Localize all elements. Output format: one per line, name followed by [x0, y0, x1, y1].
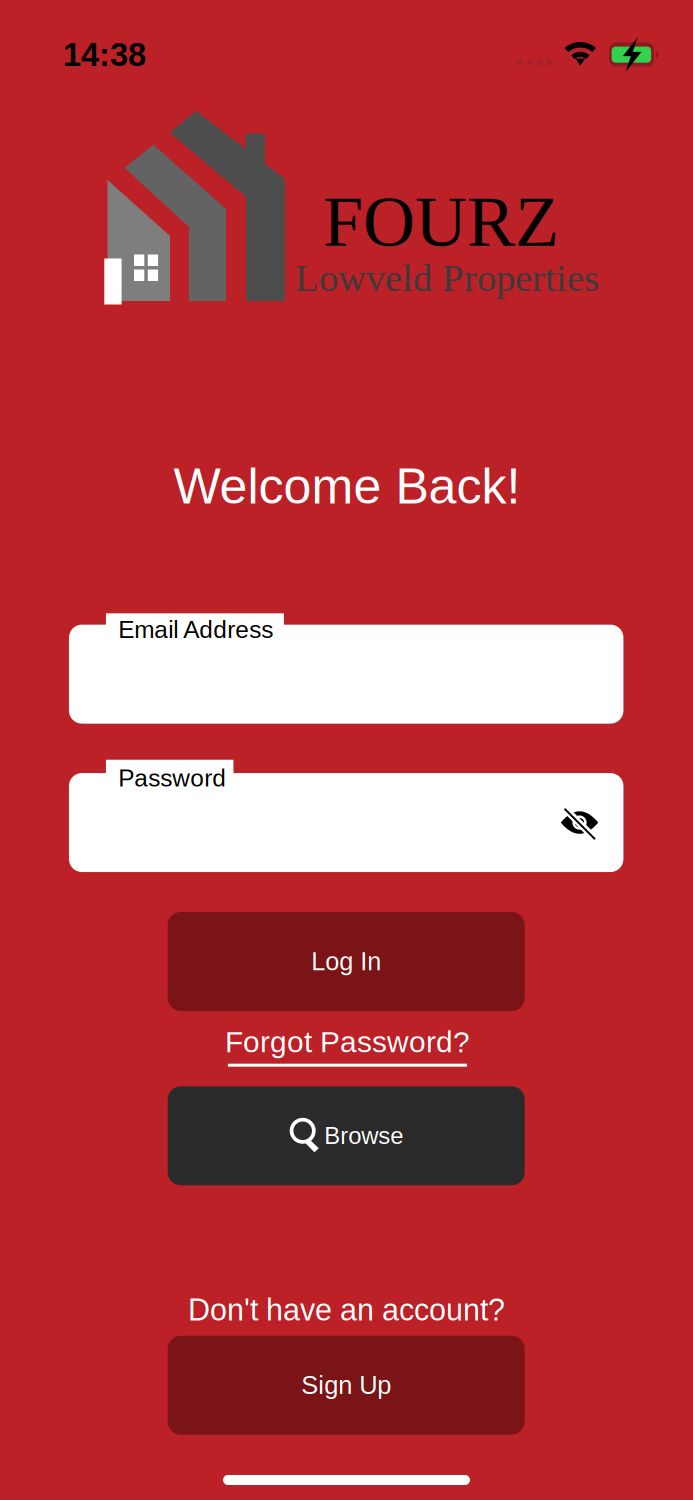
- staticText: Lowveld Properties: [295, 257, 599, 299]
- staticText: Browse: [324, 1122, 403, 1149]
- button[interactable]: Sign Up: [168, 1336, 525, 1435]
- staticText: Welcome Back!: [173, 458, 520, 514]
- button[interactable]: Password: [69, 761, 623, 872]
- staticText: FOURZ: [323, 182, 559, 261]
- button[interactable]: Email Address: [69, 613, 623, 724]
- staticText: Email Address: [118, 616, 273, 643]
- button[interactable]: Forgot Password?: [137, 1016, 557, 1076]
- staticText: Don't have an account?: [188, 1293, 505, 1327]
- button[interactable]: Browse: [168, 1086, 525, 1185]
- button[interactable]: Log In: [168, 912, 525, 1011]
- staticText: Password: [118, 764, 226, 792]
- staticText: Forgot Password?: [225, 1025, 470, 1059]
- staticText: Log In: [311, 947, 381, 976]
- staticText: Sign Up: [301, 1371, 391, 1399]
- staticText: 14:38: [63, 37, 146, 73]
